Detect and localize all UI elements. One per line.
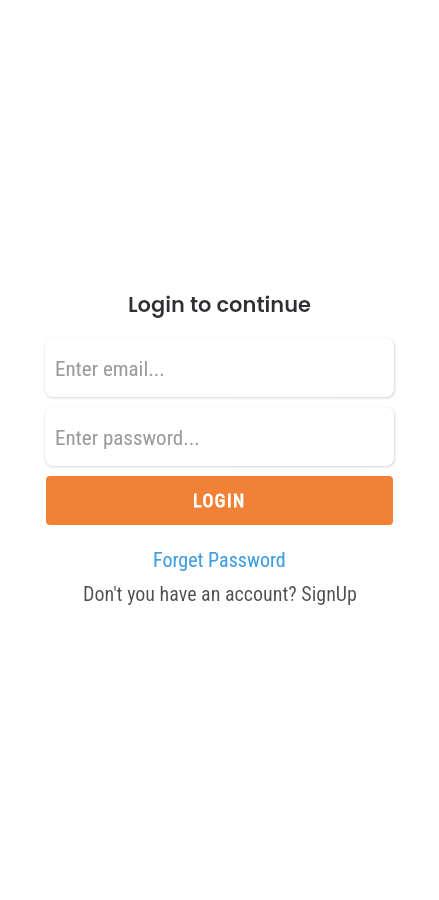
staticText: Enter password... [55,426,200,451]
staticText: Enter email... [55,357,165,382]
staticText: Login to continue [0,290,439,319]
staticText: LOGIN [193,490,246,511]
button[interactable]: Forget Password [149,547,290,572]
staticText: Forget Password [153,548,286,571]
button[interactable]: LOGIN [46,476,393,525]
button[interactable]: Password input [45,407,394,466]
button[interactable]: Don't you have an account? SignUp [79,581,361,606]
button[interactable]: Email address input [45,338,394,397]
staticText: Don't you have an account? SignUp [83,582,357,605]
